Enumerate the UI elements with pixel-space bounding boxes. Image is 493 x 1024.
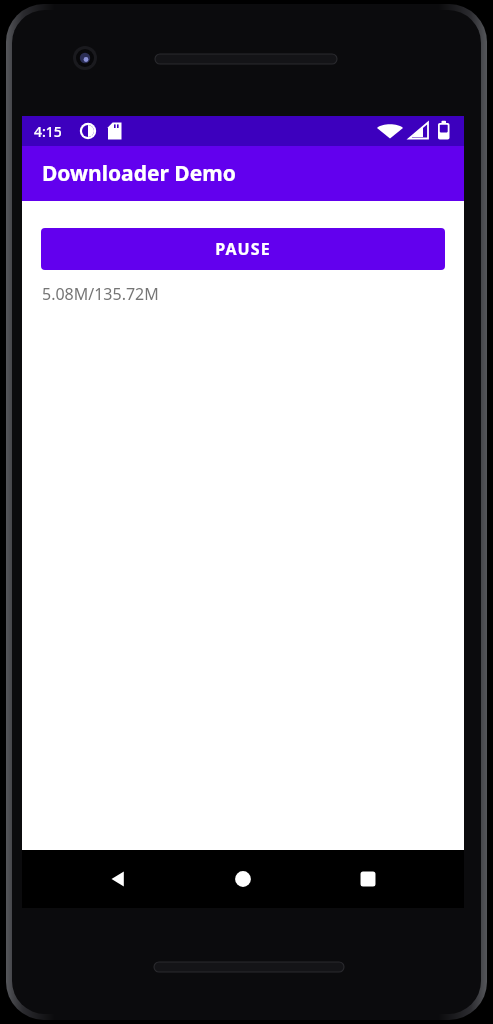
staticText: 4:15 — [34, 122, 62, 141]
staticText: Downloader Demo — [42, 159, 236, 188]
staticText: 5.08M/135.72M — [42, 283, 159, 305]
button[interactable]: Recent apps — [340, 851, 396, 907]
button[interactable]: Back — [91, 851, 147, 907]
button[interactable]: Home — [215, 851, 271, 907]
button[interactable]: PAUSE — [41, 228, 445, 270]
staticText: PAUSE — [215, 238, 271, 260]
